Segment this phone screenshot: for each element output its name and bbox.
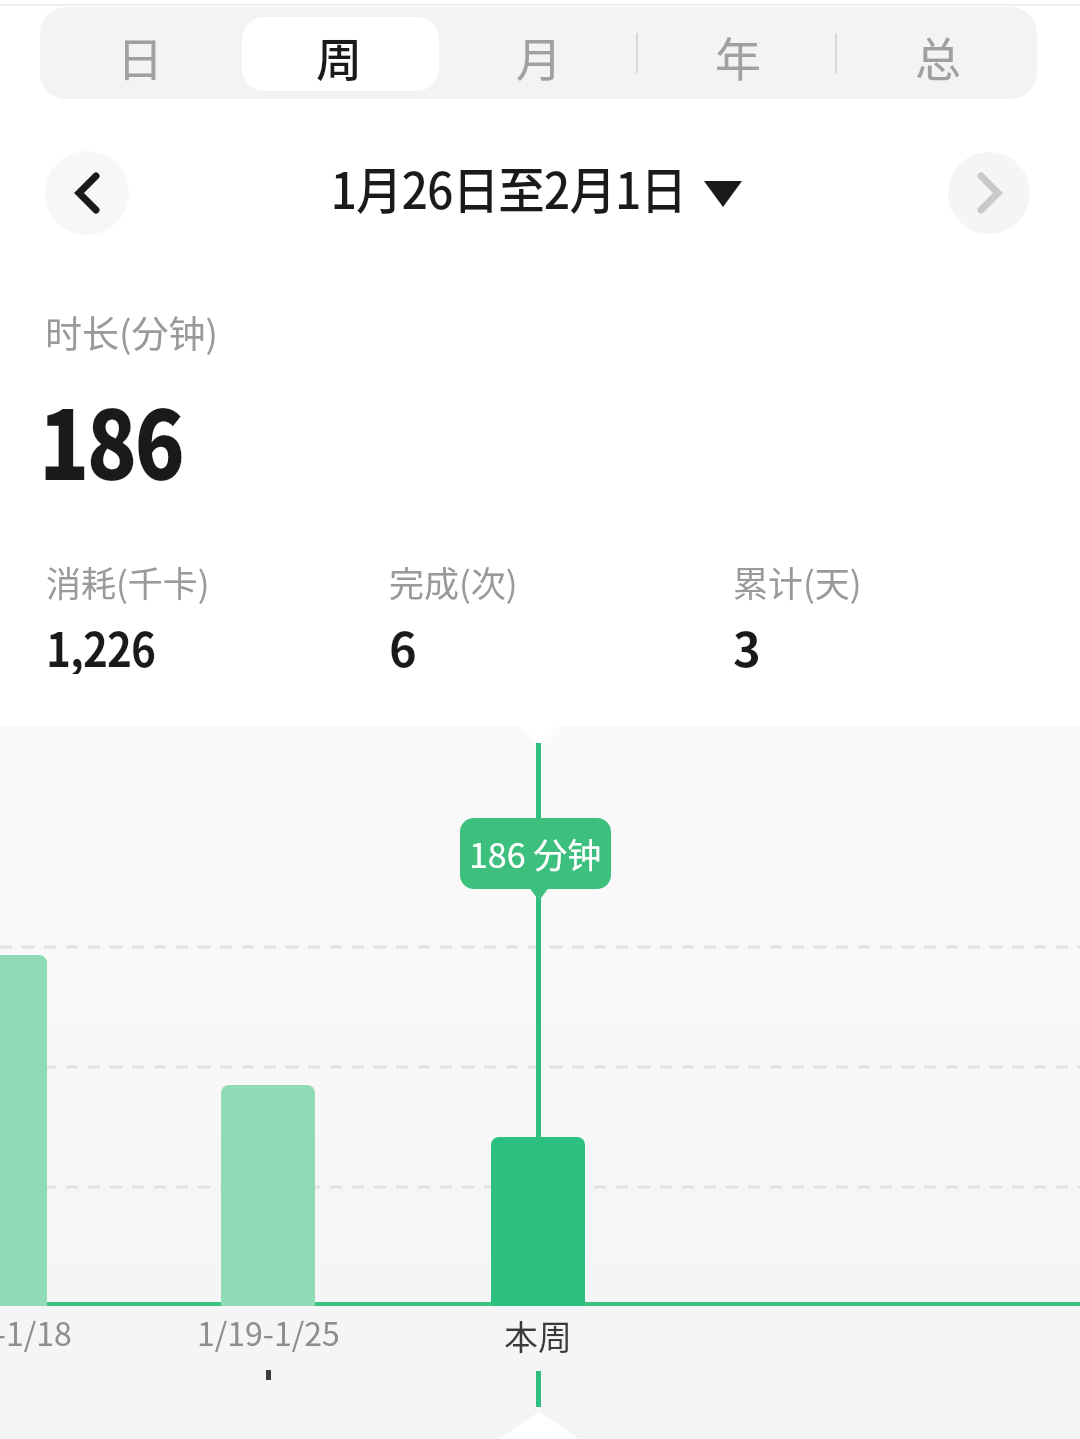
staticText: 日 xyxy=(117,23,163,90)
staticText: 186 分钟 xyxy=(469,829,602,878)
button[interactable]: 1月26日至2月1日 xyxy=(317,151,742,223)
staticText: 年 xyxy=(715,23,761,90)
staticText: 1/19-1/25 xyxy=(197,1309,340,1355)
button[interactable]: 总 xyxy=(838,10,1037,99)
staticText: 1月26日至2月1日 xyxy=(330,151,687,223)
button[interactable]: 月 xyxy=(439,10,638,99)
staticText: 累计(天) xyxy=(733,556,862,607)
button[interactable]: 年 xyxy=(638,10,837,99)
staticText: 3 xyxy=(733,612,760,674)
staticText: 总 xyxy=(915,23,961,90)
staticText: 本周 xyxy=(504,1311,572,1359)
staticText: 月 xyxy=(516,23,562,90)
staticText: 186 xyxy=(39,370,183,508)
button[interactable]: 日 xyxy=(40,10,239,99)
staticText: 周 xyxy=(316,23,362,90)
button[interactable] xyxy=(948,152,1030,234)
staticText: 6 xyxy=(389,612,416,674)
staticText: 时长(分钟) xyxy=(45,305,219,359)
button[interactable]: 周 xyxy=(239,10,438,99)
staticText: 1,226 xyxy=(46,612,156,674)
button[interactable]: 186 分钟 xyxy=(460,818,611,889)
staticText: 消耗(千卡) xyxy=(46,556,210,607)
staticText: 完成(次) xyxy=(389,556,518,607)
button[interactable]: 本周 xyxy=(388,1311,688,1359)
button[interactable] xyxy=(45,151,129,235)
staticText: 1/12-1/18 xyxy=(0,1309,72,1355)
